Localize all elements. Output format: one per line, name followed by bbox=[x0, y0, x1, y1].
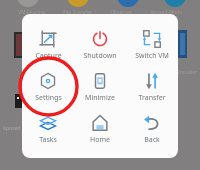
staticText: Minimize bbox=[85, 93, 115, 103]
staticText: Settings bbox=[35, 93, 62, 103]
button[interactable]: Minimize bbox=[74, 66, 126, 108]
staticText: Observer bbox=[110, 9, 132, 16]
staticText: Back bbox=[144, 135, 160, 145]
staticText: Transfer bbox=[138, 93, 166, 103]
staticText: Switch VM bbox=[135, 51, 169, 61]
button[interactable]: Home bbox=[74, 108, 126, 150]
staticText: Home bbox=[90, 135, 110, 145]
button[interactable]: Back bbox=[126, 108, 178, 150]
button[interactable]: Settings bbox=[22, 66, 74, 108]
staticText: File Transfer bbox=[63, 9, 92, 16]
staticText: Capture bbox=[35, 51, 62, 61]
staticText: Installer bbox=[178, 69, 198, 76]
staticText: Xposed bbox=[3, 125, 21, 132]
button[interactable]: Capture bbox=[22, 24, 74, 66]
staticText: Tasks bbox=[39, 135, 57, 145]
button[interactable]: Transfer bbox=[126, 66, 178, 108]
button[interactable]: Tasks bbox=[22, 108, 74, 150]
staticText: Xposed Mods bbox=[150, 9, 182, 16]
staticText: Shutdown bbox=[83, 51, 117, 61]
button[interactable]: Switch VM bbox=[126, 24, 178, 66]
staticText: VM Sharing bbox=[18, 9, 45, 16]
button[interactable]: Shutdown bbox=[74, 24, 126, 66]
